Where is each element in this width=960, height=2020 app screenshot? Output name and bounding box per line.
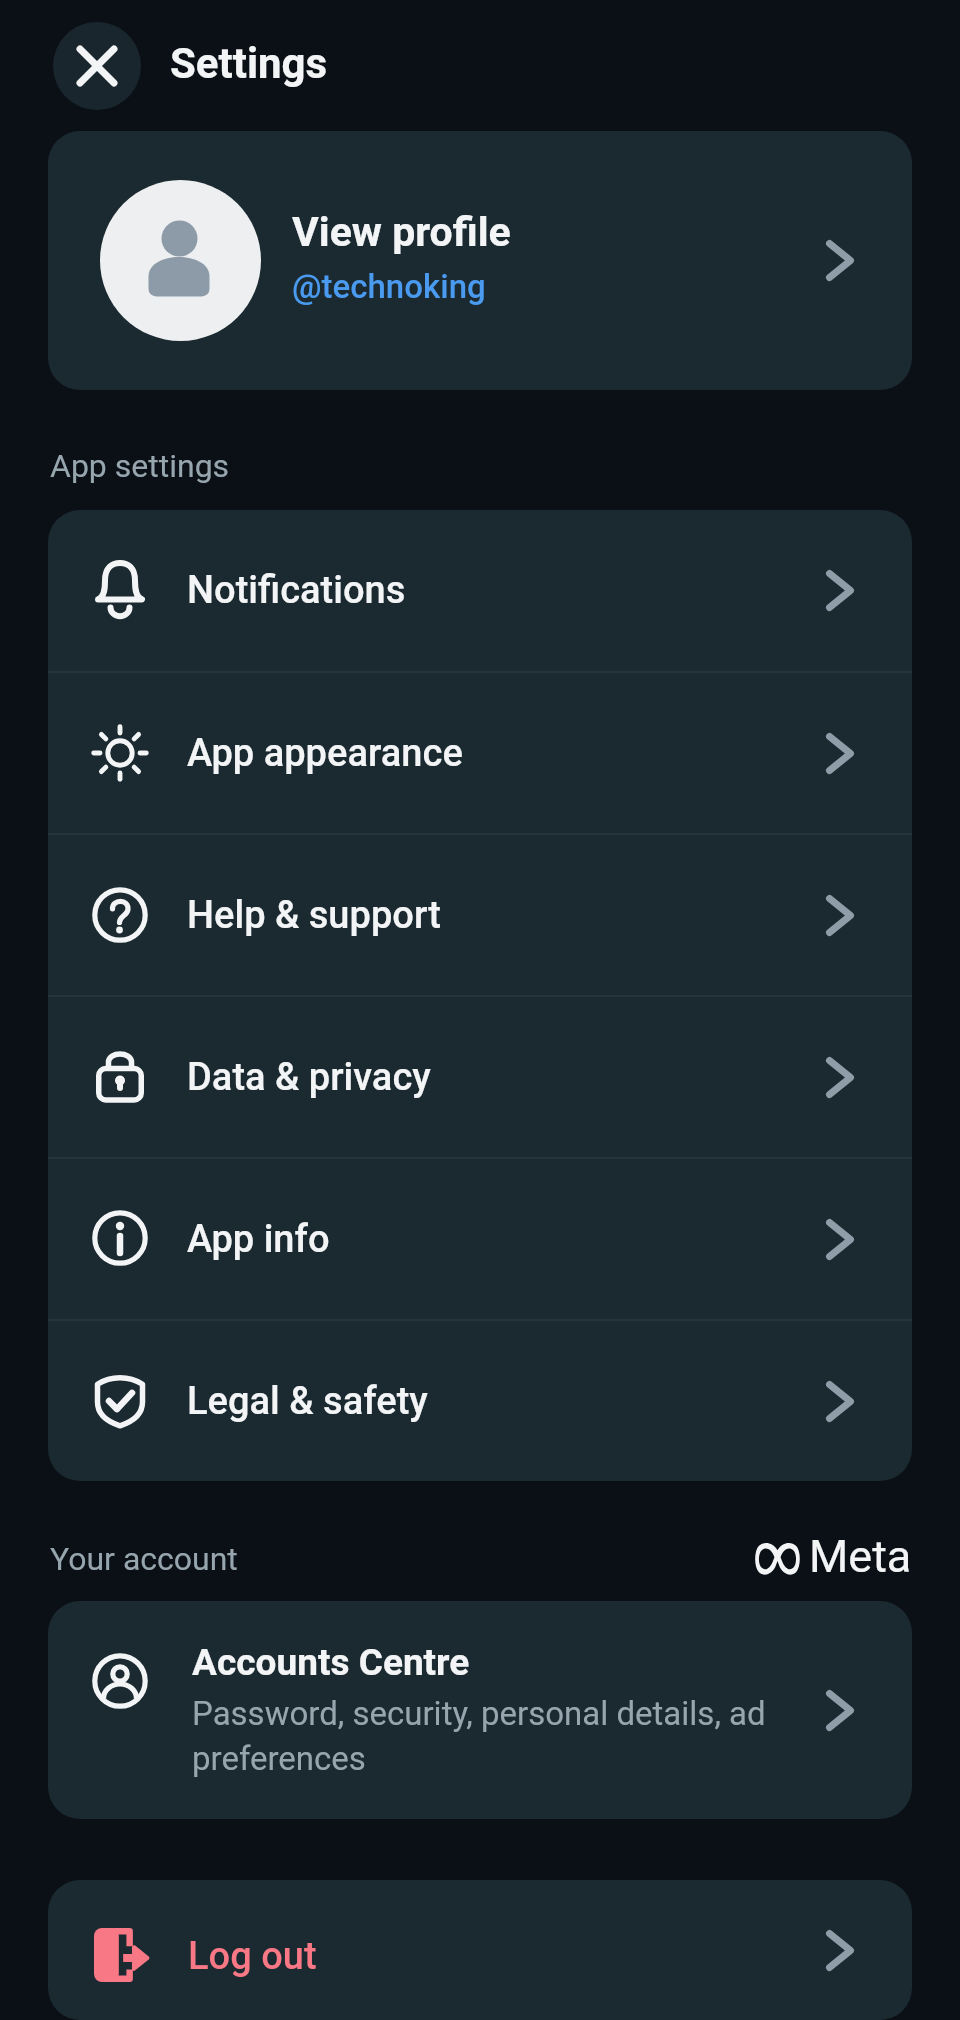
button[interactable]: Notifications: [48, 510, 912, 671]
staticText: Your account: [50, 1540, 238, 1578]
staticText: App appearance: [187, 731, 826, 776]
staticText: App settings: [50, 447, 230, 485]
button[interactable]: Data & privacy: [48, 997, 912, 1157]
button[interactable]: Legal & safety: [48, 1321, 912, 1481]
staticText: Notifications: [187, 568, 826, 613]
button[interactable]: App appearance: [48, 673, 912, 833]
staticText: App info: [187, 1217, 826, 1262]
button[interactable]: App info: [48, 1159, 912, 1319]
staticText: Settings: [170, 39, 328, 88]
button[interactable]: Accounts Centre: [48, 1601, 912, 1819]
staticText: Accounts Centre: [192, 1641, 470, 1684]
staticText: Data & privacy: [187, 1055, 826, 1100]
staticText: View profile: [292, 208, 511, 256]
staticText: Help & support: [187, 893, 826, 938]
staticText: Log out: [188, 1934, 826, 1979]
button[interactable]: View profile: [48, 131, 912, 390]
button[interactable]: Help & support: [48, 835, 912, 995]
staticText: Meta: [809, 1530, 912, 1583]
staticText: Password, security, personal details, ad…: [192, 1694, 812, 1778]
staticText: Legal & safety: [187, 1379, 826, 1424]
button[interactable]: Close: [53, 22, 141, 110]
button[interactable]: Log out: [48, 1880, 912, 2020]
staticText: @technoking: [292, 267, 486, 306]
